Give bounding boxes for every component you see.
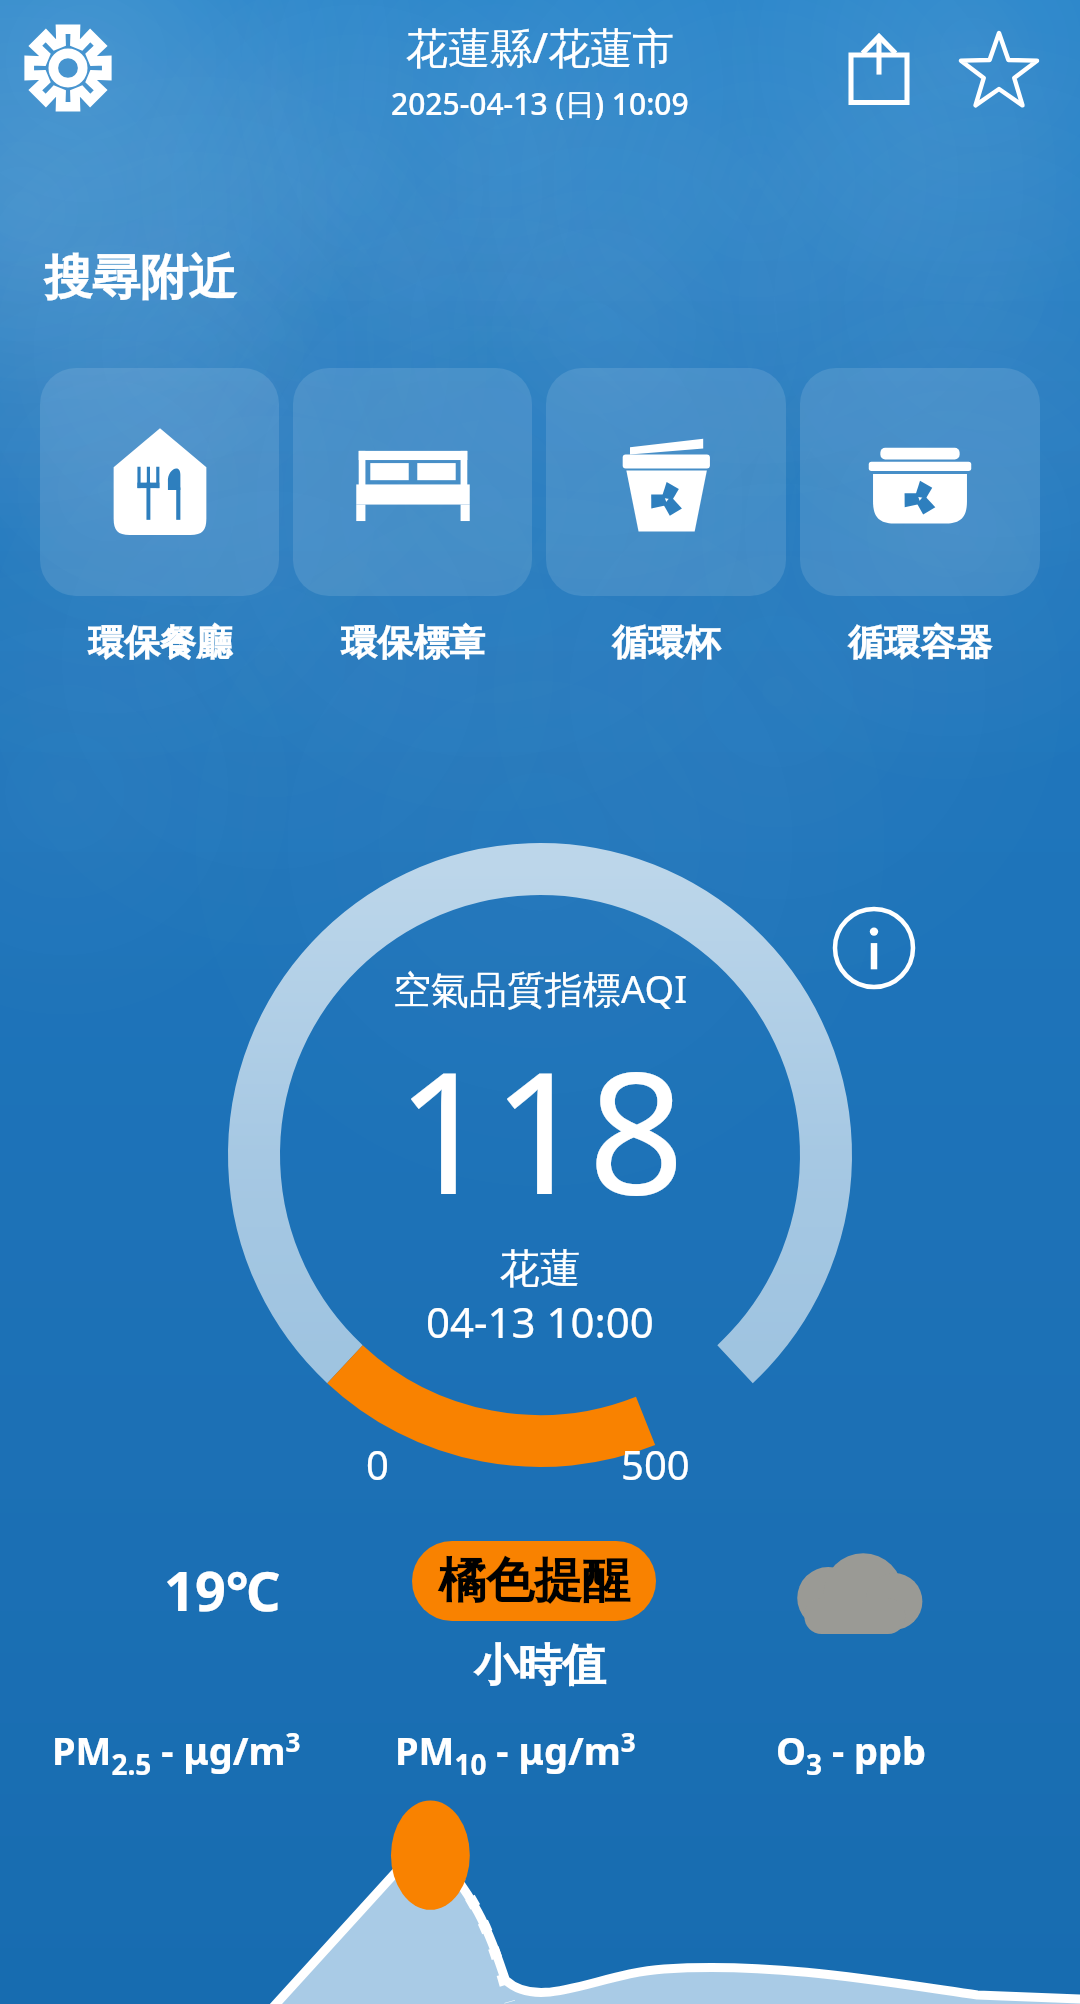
staticText: 循環杯	[612, 620, 720, 665]
staticText: PM2.5 - μg/m3	[52, 1724, 301, 1783]
staticText: 花蓮縣/花蓮市	[406, 18, 675, 75]
staticText: 花蓮	[500, 1243, 580, 1293]
button[interactable]: 環保標章	[293, 368, 532, 665]
button[interactable]: 環保餐廳	[40, 368, 279, 665]
staticText: 0	[366, 1437, 389, 1491]
staticText: 04-13 10:00	[426, 1293, 654, 1350]
staticText: 118	[396, 1014, 685, 1243]
staticText: 500	[621, 1437, 690, 1491]
button[interactable]: Add to favorites	[940, 10, 1058, 128]
staticText: 橘色提醒	[438, 1551, 630, 1611]
staticText: 環保餐廳	[88, 620, 232, 665]
staticText: PM10 - μg/m3	[395, 1724, 636, 1783]
button[interactable]: 循環容器	[800, 368, 1040, 665]
staticText: 循環容器	[848, 620, 992, 665]
staticText: 19℃	[164, 1553, 281, 1627]
button[interactable]: Share	[820, 10, 938, 128]
button[interactable]: Information	[833, 907, 915, 989]
staticText: O3 - ppb	[776, 1724, 927, 1783]
staticText: 2025-04-13 (日) 10:09	[391, 83, 689, 124]
staticText: 小時值	[0, 1638, 1080, 1693]
staticText: 空氣品質指標AQI	[393, 962, 688, 1014]
button[interactable]: 橘色提醒	[412, 1541, 656, 1621]
staticText: 環保標章	[341, 620, 485, 665]
button[interactable]: Settings	[12, 12, 124, 124]
button[interactable]: 循環杯	[546, 368, 786, 665]
staticText: 搜尋附近	[44, 248, 236, 308]
